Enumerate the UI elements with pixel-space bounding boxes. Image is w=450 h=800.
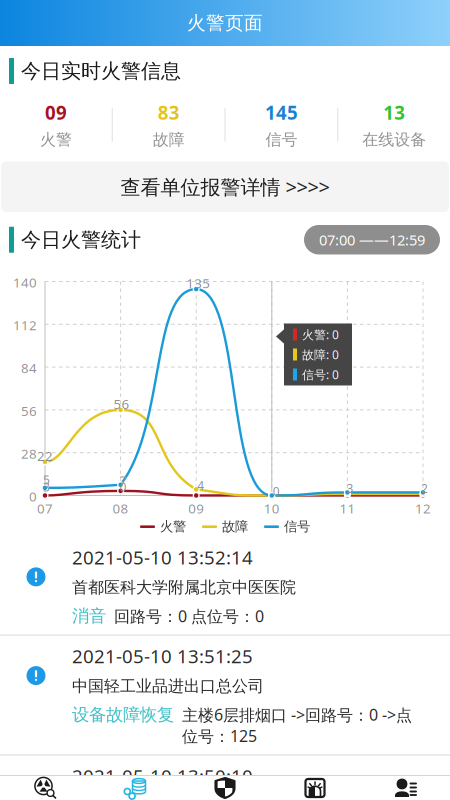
staticText: 2021-05-10 13:50:10 bbox=[72, 763, 253, 788]
staticText: 故障 bbox=[153, 130, 185, 149]
staticText: 10 bbox=[264, 499, 280, 517]
staticText: 0 bbox=[29, 487, 37, 505]
staticText: 信号 bbox=[265, 130, 297, 149]
button[interactable]: 145 bbox=[225, 98, 337, 151]
button[interactable]: 安全防护 bbox=[180, 776, 270, 799]
staticText: 信号 bbox=[284, 518, 310, 535]
staticText: 北京市第一实验小学 bbox=[72, 796, 216, 800]
staticText: 3 bbox=[43, 479, 50, 495]
staticText: 12 bbox=[415, 499, 431, 517]
button[interactable]: 数据统计 bbox=[90, 776, 180, 799]
staticText: 2 bbox=[421, 480, 428, 496]
staticText: 首都医科大学附属北京中医医院 bbox=[72, 578, 296, 597]
staticText: 故障 bbox=[222, 518, 248, 535]
staticText: 回路号：0 点位号：0 bbox=[114, 605, 264, 626]
button[interactable]: 2021-05-10 13:50:10 bbox=[0, 755, 450, 800]
staticText: 火警 bbox=[40, 130, 72, 149]
staticText: 中国轻工业品进出口总公司 bbox=[72, 676, 264, 696]
staticText: 2021-05-10 13:51:25 bbox=[72, 644, 253, 668]
staticText: 09 bbox=[188, 499, 204, 517]
staticText: 56 bbox=[21, 402, 37, 420]
staticText: 140 bbox=[13, 273, 37, 291]
staticText: 84 bbox=[21, 359, 37, 377]
staticText: 主楼6层排烟口 ->回路号：0 ->点位号：125 bbox=[182, 704, 412, 746]
staticText: 在线设备 bbox=[362, 130, 426, 149]
button[interactable]: 2021-05-10 13:51:25 bbox=[0, 636, 450, 754]
staticText: 4 bbox=[197, 477, 204, 493]
staticText: 28 bbox=[21, 445, 37, 462]
staticText: 135 bbox=[186, 274, 210, 292]
staticText: 112 bbox=[13, 316, 37, 334]
staticText: 火警: 0 bbox=[302, 326, 339, 342]
staticText: 0 bbox=[273, 483, 280, 499]
staticText: 13 bbox=[383, 100, 405, 125]
staticText: 56 bbox=[114, 395, 130, 413]
staticText: 145 bbox=[265, 100, 298, 125]
button[interactable]: 我的 bbox=[360, 776, 450, 799]
staticText: 2021-05-10 13:52:14 bbox=[72, 545, 253, 570]
staticText: 22 bbox=[37, 447, 53, 465]
button[interactable]: 2021-05-10 13:52:14 bbox=[0, 537, 450, 635]
staticText: 08 bbox=[113, 499, 129, 517]
staticText: 设备故障恢复 bbox=[72, 704, 174, 725]
button[interactable]: 火警查询 bbox=[0, 776, 90, 799]
staticText: 0 bbox=[120, 479, 127, 495]
staticText: 火警 bbox=[160, 518, 186, 535]
staticText: 7 bbox=[120, 473, 127, 489]
staticText: 09 bbox=[45, 100, 67, 125]
button[interactable]: 报警 bbox=[270, 776, 360, 799]
staticText: 83 bbox=[158, 100, 180, 125]
staticText: 今日实时火警信息 bbox=[21, 59, 181, 83]
staticText: 消音 bbox=[72, 605, 106, 627]
staticText: 信号: 0 bbox=[302, 366, 339, 382]
button[interactable]: 查看单位报警详情 >>>> bbox=[1, 161, 449, 212]
button[interactable]: 13 bbox=[338, 98, 450, 151]
staticText: 07 bbox=[37, 499, 53, 517]
staticText: 07:00 ——12:59 bbox=[319, 230, 425, 249]
staticText: 11 bbox=[339, 499, 355, 517]
button[interactable]: 09 bbox=[0, 98, 112, 151]
staticText: 3 bbox=[346, 480, 353, 496]
button[interactable]: 83 bbox=[113, 98, 225, 151]
staticText: 故障: 0 bbox=[302, 346, 339, 362]
staticText: 火警页面 bbox=[187, 11, 263, 34]
staticText: 今日火警统计 bbox=[21, 227, 141, 252]
staticText: 5 bbox=[43, 472, 50, 488]
staticText: 查看单位报警详情 >>>> bbox=[120, 173, 329, 200]
